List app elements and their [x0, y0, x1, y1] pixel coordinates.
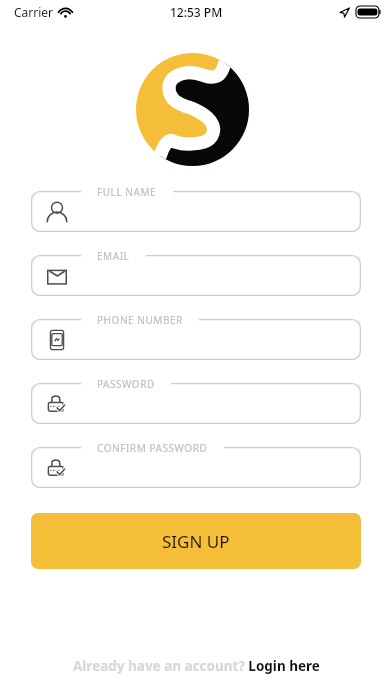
- staticText: Already have an account? Login here: [73, 657, 320, 675]
- staticText: 12:53 PM: [170, 4, 223, 20]
- button[interactable]: PASSWORD: [31, 383, 361, 424]
- staticText: CONFIRM PASSWORD: [97, 441, 208, 455]
- staticText: PHONE NUMBER: [97, 313, 183, 327]
- staticText: Carrier: [14, 4, 54, 20]
- button[interactable]: EMAIL: [31, 255, 361, 296]
- button[interactable]: SIGN UP: [31, 513, 361, 569]
- button[interactable]: Already have an account? Login here: [67, 655, 326, 677]
- staticText: SIGN UP: [162, 530, 230, 553]
- button[interactable]: FULL NAME: [31, 191, 361, 232]
- staticText: PASSWORD: [97, 377, 155, 391]
- staticText: FULL NAME: [97, 185, 157, 199]
- button[interactable]: CONFIRM PASSWORD: [31, 447, 361, 488]
- button[interactable]: PHONE NUMBER: [31, 319, 361, 360]
- staticText: EMAIL: [97, 249, 130, 263]
